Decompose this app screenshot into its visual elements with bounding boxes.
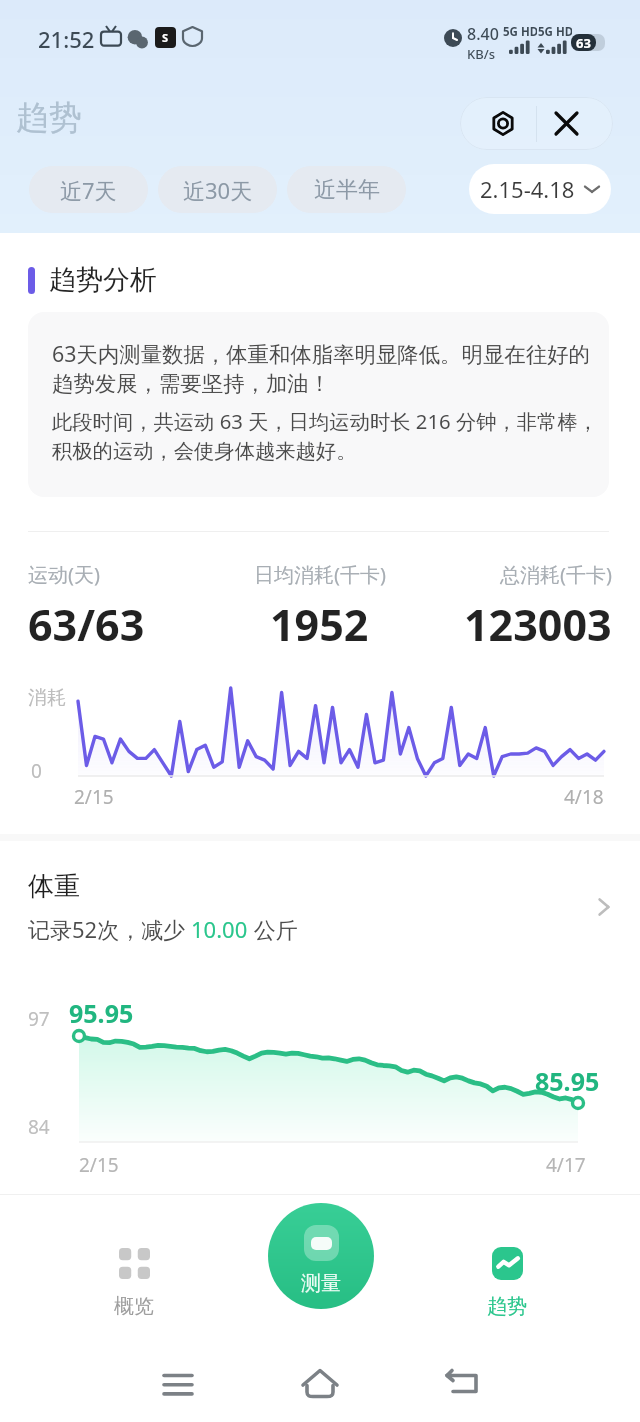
staticText: 2/15 bbox=[74, 784, 114, 810]
staticText: 2.15-4.18 bbox=[480, 174, 575, 204]
button[interactable]: 体重 bbox=[28, 870, 614, 944]
staticText: 5G HD bbox=[503, 24, 537, 40]
staticText: 近7天 bbox=[60, 175, 117, 205]
staticText: 63天内测量数据，体重和体脂率明显降低。明显在往好的 趋势发展，需要坚持，加油！ bbox=[52, 339, 590, 398]
button[interactable]: 测量 bbox=[268, 1203, 374, 1309]
staticText: S bbox=[162, 30, 169, 45]
button[interactable]: 近30天 bbox=[158, 166, 277, 213]
staticText: 123003 bbox=[464, 595, 612, 654]
button[interactable]: 概览 bbox=[94, 1248, 174, 1319]
button[interactable]: 近半年 bbox=[287, 166, 406, 213]
staticText: 5G HD bbox=[538, 24, 572, 40]
staticText: 趋势 bbox=[487, 1294, 527, 1319]
staticText: 体重 bbox=[28, 870, 80, 903]
staticText: 消耗 bbox=[28, 686, 66, 710]
staticText: 4/17 bbox=[546, 1152, 586, 1178]
staticText: 63 bbox=[576, 34, 591, 51]
staticText: 85.95 bbox=[535, 1064, 600, 1098]
staticText: 10.00 bbox=[191, 914, 248, 944]
staticText: 0 bbox=[31, 758, 42, 784]
staticText: 63/63 bbox=[28, 595, 145, 654]
button[interactable]: Recent apps bbox=[160, 1369, 196, 1397]
staticText: 日均消耗(千卡) bbox=[254, 561, 386, 588]
staticText: 8.40 bbox=[467, 23, 499, 45]
button[interactable]: Back bbox=[444, 1368, 480, 1396]
staticText: 21:52 bbox=[38, 24, 95, 54]
button[interactable]: More options bbox=[460, 97, 536, 150]
staticText: 95.95 bbox=[69, 996, 134, 1030]
staticText: 概览 bbox=[114, 1294, 154, 1319]
staticText: 记录52次，减少 bbox=[28, 914, 191, 944]
staticText: 近30天 bbox=[183, 175, 253, 205]
staticText: 97 bbox=[28, 1006, 50, 1032]
staticText: 此段时间，共运动 63 天，日均运动时长 216 分钟，非常棒， 积极的运动，会… bbox=[52, 407, 598, 464]
staticText: 趋势分析 bbox=[49, 263, 157, 297]
staticText: KB/s bbox=[467, 45, 496, 63]
button[interactable]: Close bbox=[537, 97, 613, 150]
staticText: 测量 bbox=[301, 1271, 341, 1296]
staticText: 公斤 bbox=[248, 914, 298, 944]
staticText: 总消耗(千卡) bbox=[500, 561, 612, 588]
button[interactable]: 近7天 bbox=[29, 166, 148, 213]
staticText: 2/15 bbox=[79, 1152, 119, 1178]
staticText: 趋势 bbox=[16, 97, 82, 139]
staticText: 1952 bbox=[270, 595, 369, 654]
staticText: 4/18 bbox=[564, 784, 604, 810]
staticText: 近半年 bbox=[314, 176, 380, 204]
staticText: 运动(天) bbox=[28, 561, 100, 588]
button[interactable]: 趋势 bbox=[467, 1247, 547, 1319]
button[interactable]: 2.15-4.18 bbox=[469, 164, 611, 214]
staticText: 84 bbox=[28, 1114, 50, 1140]
button[interactable]: Home bbox=[298, 1366, 342, 1398]
